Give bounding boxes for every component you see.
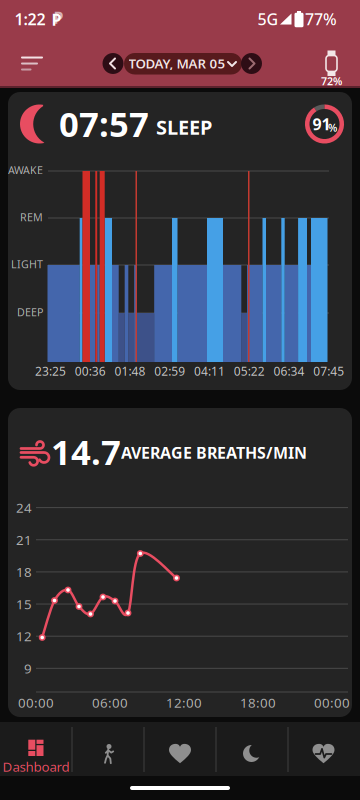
staticText: 12:00 — [166, 694, 202, 711]
staticText: 18:00 — [240, 694, 276, 711]
staticText: 9 — [24, 659, 32, 677]
staticText: 07:57 — [59, 100, 149, 146]
staticText: 12 — [16, 627, 32, 645]
staticText: 1:22 — [14, 8, 45, 30]
staticText: 00:00 — [314, 694, 350, 711]
staticText: 06:34 — [273, 363, 304, 379]
staticText: 07:45 — [313, 363, 344, 379]
button[interactable]: Heart rate — [144, 722, 216, 776]
staticText: 91 — [312, 113, 330, 135]
staticText: 5G — [257, 8, 278, 30]
button[interactable]: Sleep — [216, 722, 288, 776]
staticText: LIGHT — [11, 257, 43, 271]
staticText: 05:22 — [234, 363, 265, 379]
staticText: 21 — [16, 531, 32, 549]
staticText: 77% — [305, 8, 337, 30]
staticText: 02:59 — [154, 363, 185, 379]
button[interactable]: Previous day — [102, 53, 123, 74]
staticText: Dashboard — [2, 758, 69, 775]
staticText: 04:11 — [194, 363, 225, 379]
staticText: 18 — [16, 563, 32, 581]
button[interactable]: Dashboard — [0, 722, 72, 776]
button[interactable]: Menu — [20, 54, 44, 72]
staticText: 00:36 — [75, 363, 106, 379]
staticText: REM — [20, 210, 43, 224]
staticText: TODAY, MAR 05 — [128, 54, 225, 72]
staticText: AVERAGE BREATHS/MIN — [121, 442, 307, 463]
staticText: 24 — [16, 499, 32, 516]
button[interactable]: Activity — [72, 722, 144, 776]
staticText: P — [53, 7, 63, 28]
staticText: SLEEP — [156, 114, 212, 140]
staticText: AWAKE — [8, 163, 43, 177]
button[interactable]: Select date — [124, 53, 242, 74]
button[interactable]: Health — [288, 722, 360, 776]
staticText: % — [328, 120, 337, 135]
staticText: 00:00 — [18, 694, 54, 711]
staticText: 15 — [16, 595, 32, 613]
button[interactable]: Next day — [241, 53, 262, 74]
staticText: P — [51, 9, 61, 30]
staticText: DEEP — [17, 305, 43, 319]
staticText: 01:48 — [114, 363, 145, 379]
staticText: 06:00 — [92, 694, 128, 711]
staticText: 23:25 — [35, 363, 66, 379]
staticText: 14.7 — [51, 428, 121, 474]
staticText: 72% — [321, 74, 342, 88]
